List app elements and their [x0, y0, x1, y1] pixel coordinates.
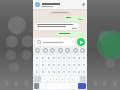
button[interactable]: Key [57, 55, 61, 61]
button[interactable]: Key [34, 69, 39, 75]
button[interactable]: Key [42, 76, 47, 82]
button[interactable]: Key [77, 55, 81, 61]
button[interactable]: Key [48, 76, 53, 82]
button[interactable]: Symbols [34, 83, 39, 89]
button[interactable] [35, 23, 79, 30]
button[interactable] [57, 32, 85, 36]
button[interactable] [35, 38, 75, 46]
button[interactable]: Emoji category 4 [65, 48, 70, 53]
button[interactable]: Key [72, 62, 76, 68]
button[interactable]: Key [40, 69, 45, 75]
button[interactable]: Key [34, 55, 39, 61]
button[interactable]: Key [40, 62, 45, 68]
button[interactable]: Key [52, 55, 56, 61]
button[interactable]: Key [40, 55, 45, 61]
button[interactable]: Key [75, 76, 79, 82]
button[interactable]: Key [70, 76, 74, 82]
button[interactable]: Emoji category 1 [43, 48, 48, 53]
button[interactable]: Key [72, 55, 76, 61]
button[interactable]: Key [46, 55, 51, 61]
button[interactable] [64, 16, 85, 21]
button[interactable]: Emoji category 2 [50, 48, 55, 53]
button[interactable]: Enter [78, 83, 86, 89]
button[interactable]: Key [67, 69, 71, 75]
button[interactable]: Key [82, 69, 86, 75]
button[interactable]: Emoji category 3 [58, 48, 63, 53]
button[interactable]: Contact avatar [33, 0, 87, 9]
button[interactable]: Key [62, 55, 66, 61]
button[interactable]: Key [77, 69, 81, 75]
button[interactable]: Key [82, 55, 86, 61]
button[interactable]: Key [46, 62, 51, 68]
button[interactable]: Key [62, 69, 66, 75]
button[interactable]: Key [67, 55, 71, 61]
button[interactable]: Key [65, 76, 69, 82]
button[interactable]: Key [72, 69, 76, 75]
button[interactable]: Key [54, 76, 59, 82]
button[interactable]: Key [62, 62, 66, 68]
button[interactable]: Key [60, 76, 64, 82]
button[interactable]: Emoji category 5 [73, 48, 78, 53]
button[interactable]: Emoji category 0 [35, 48, 40, 53]
button[interactable]: Key [57, 69, 61, 75]
button[interactable]: Key [57, 62, 61, 68]
button[interactable]: Key [82, 62, 86, 68]
button[interactable]: Send [77, 38, 85, 46]
button[interactable]: Key [34, 62, 39, 68]
button[interactable]: More options [82, 3, 85, 6]
button[interactable]: Key [52, 62, 56, 68]
button[interactable]: Key [67, 62, 71, 68]
button[interactable]: Key [46, 69, 51, 75]
button[interactable]: Key [52, 69, 56, 75]
button[interactable]: Key [77, 62, 81, 68]
button[interactable]: Emoji category 6 [80, 48, 85, 53]
other: Contact avatar [35, 2, 40, 7]
